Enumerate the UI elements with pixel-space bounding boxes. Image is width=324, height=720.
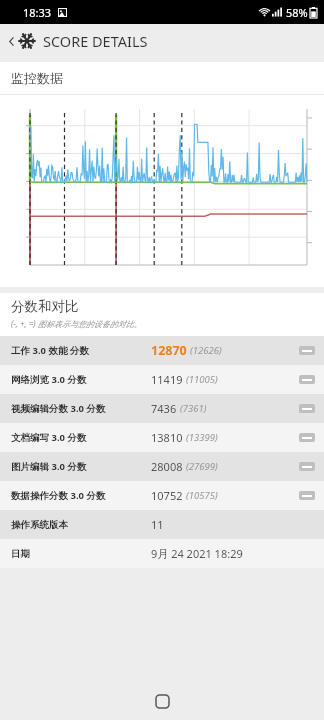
other: Equal to your device xyxy=(299,404,315,413)
staticText: 监控数据 xyxy=(11,70,63,86)
staticText: 文档编写 3.0 分数 xyxy=(11,431,151,444)
staticText: (7361) xyxy=(180,402,207,415)
other: Equal to your device xyxy=(299,491,315,500)
staticText: 视频编辑分数 3.0 分数 xyxy=(11,402,151,415)
staticText: 图片编辑 3.0 分数 xyxy=(11,460,151,473)
other: Equal to your device xyxy=(299,375,315,384)
staticText: 10752 xyxy=(151,488,183,503)
other: Equal to your device xyxy=(299,346,315,355)
button[interactable]: 操作系统版本 xyxy=(0,510,324,539)
staticText: (11005) xyxy=(186,373,218,386)
button[interactable]: 视频编辑分数 3.0 分数 xyxy=(0,394,324,423)
staticText: 分数和对比 xyxy=(11,298,79,315)
staticText: 7436 xyxy=(151,401,177,416)
button[interactable]: 工作 3.0 效能 分数 xyxy=(0,336,324,365)
staticText: (10575) xyxy=(186,489,218,502)
staticText: 数据操作分数 3.0 分数 xyxy=(11,489,151,502)
other: Equal to your device xyxy=(299,462,315,471)
staticText: 网络浏览 3.0 分数 xyxy=(11,373,151,386)
staticText: 工作 3.0 效能 分数 xyxy=(11,344,151,357)
staticText: (27699) xyxy=(186,460,218,473)
button[interactable]: 文档编写 3.0 分数 xyxy=(0,423,324,452)
staticText: 12870 xyxy=(151,342,187,359)
button[interactable]: 数据操作分数 3.0 分数 xyxy=(0,481,324,510)
other: Equal to your device xyxy=(299,433,315,442)
staticText: SCORE DETAILS xyxy=(43,31,148,51)
staticText: 28008 xyxy=(151,459,183,474)
staticText: 11419 xyxy=(151,372,183,387)
staticText: 11 xyxy=(151,517,164,532)
staticText: (-, +, =) 图标表示与您的设备的对比。 xyxy=(11,318,142,329)
button[interactable]: 图片编辑 3.0 分数 xyxy=(0,452,324,481)
staticText: (13399) xyxy=(186,431,218,444)
button[interactable]: Back xyxy=(5,35,18,48)
button[interactable]: Home xyxy=(151,690,173,712)
button[interactable]: 日期 xyxy=(0,539,324,568)
staticText: 9月 24 2021 18:29 xyxy=(151,546,243,561)
staticText: 18:33 xyxy=(23,5,52,20)
staticText: 13810 xyxy=(151,430,183,445)
staticText: 日期 xyxy=(11,548,151,560)
staticText: (12626) xyxy=(190,344,222,357)
staticText: 操作系统版本 xyxy=(11,519,151,531)
button[interactable]: 网络浏览 3.0 分数 xyxy=(0,365,324,394)
staticText: 58% xyxy=(286,5,308,20)
